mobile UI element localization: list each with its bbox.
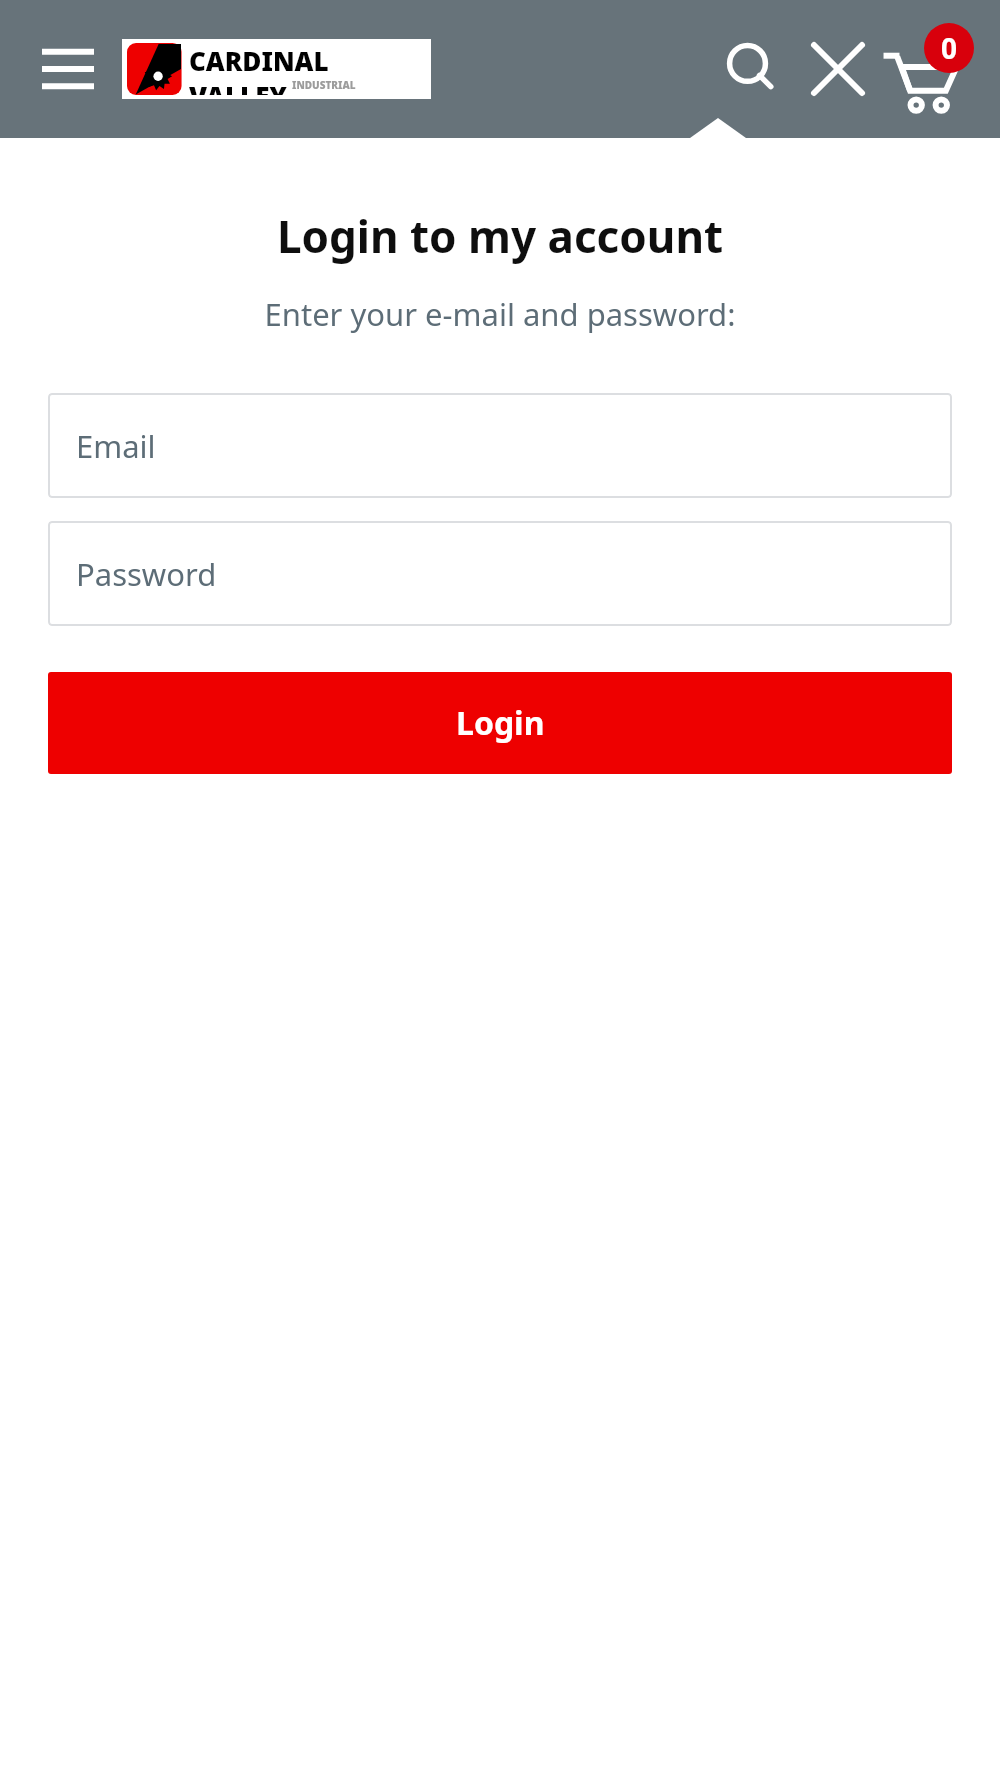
button[interactable]: Login [48, 672, 952, 774]
staticText: Enter your e-mail and password: [0, 293, 1000, 335]
staticText: Email [76, 425, 156, 467]
button[interactable]: Password [48, 521, 952, 626]
staticText: Login to my account [0, 206, 1000, 266]
button[interactable]: Cardinal Valley Industrial Supply [122, 39, 431, 99]
staticText: CARDINAL [189, 43, 329, 78]
button[interactable]: Search [712, 29, 792, 109]
button[interactable]: Close [798, 29, 878, 109]
staticText: VALLEY [189, 78, 287, 95]
button[interactable]: Shopping cart, 0 items [882, 23, 974, 115]
staticText: 0 [941, 29, 958, 67]
staticText: Login [456, 701, 545, 745]
staticText: INDUSTRIAL [292, 78, 356, 92]
button[interactable]: Email [48, 393, 952, 498]
staticText: Password [76, 553, 217, 595]
button[interactable]: Menu [34, 35, 102, 103]
